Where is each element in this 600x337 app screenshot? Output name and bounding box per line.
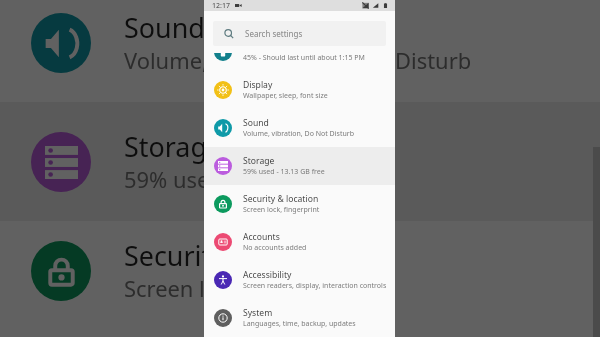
staticText: 12:17 <box>212 1 230 11</box>
button[interactable]: Search settings <box>213 21 386 46</box>
button[interactable]: Storage <box>204 147 395 185</box>
staticText: Screen lock, fingerprint <box>243 205 320 215</box>
button[interactable]: Accessibility <box>204 261 395 299</box>
staticText: 45% - Should last until about 1:15 PM <box>243 53 365 63</box>
button[interactable]: Accounts <box>204 223 395 261</box>
button[interactable]: Sound <box>204 109 395 147</box>
staticText: Security & location <box>124 237 360 274</box>
button[interactable]: Battery <box>204 53 395 71</box>
staticText: 59% used - 13.13 GB free <box>124 165 380 195</box>
staticText: System <box>243 307 273 319</box>
staticText: No accounts added <box>243 243 307 253</box>
staticText: Storage <box>124 128 223 165</box>
staticText: Screen readers, display, interaction con… <box>243 281 387 291</box>
staticText: Security & location <box>243 193 319 205</box>
staticText: Sound <box>124 9 205 46</box>
button[interactable]: Security & location <box>204 185 395 223</box>
staticText: Storage <box>243 155 275 167</box>
staticText: Display <box>243 79 273 91</box>
staticText: Volume, vibration, Do Not Disturb <box>243 129 354 139</box>
button[interactable]: Display <box>204 71 395 109</box>
staticText: Accounts <box>243 231 280 243</box>
staticText: Sound <box>243 117 269 129</box>
staticText: 59% used - 13.13 GB free <box>243 167 325 177</box>
staticText: Languages, time, backup, updates <box>243 319 356 329</box>
staticText: Volume, vibration, Do Not Disturb <box>124 46 472 76</box>
staticText: Search settings <box>245 28 303 39</box>
staticText: Screen lock, fingerprint <box>124 274 363 304</box>
button[interactable]: System <box>204 299 395 337</box>
staticText: Wallpaper, sleep, font size <box>243 91 328 101</box>
staticText: Accessibility <box>243 269 292 281</box>
